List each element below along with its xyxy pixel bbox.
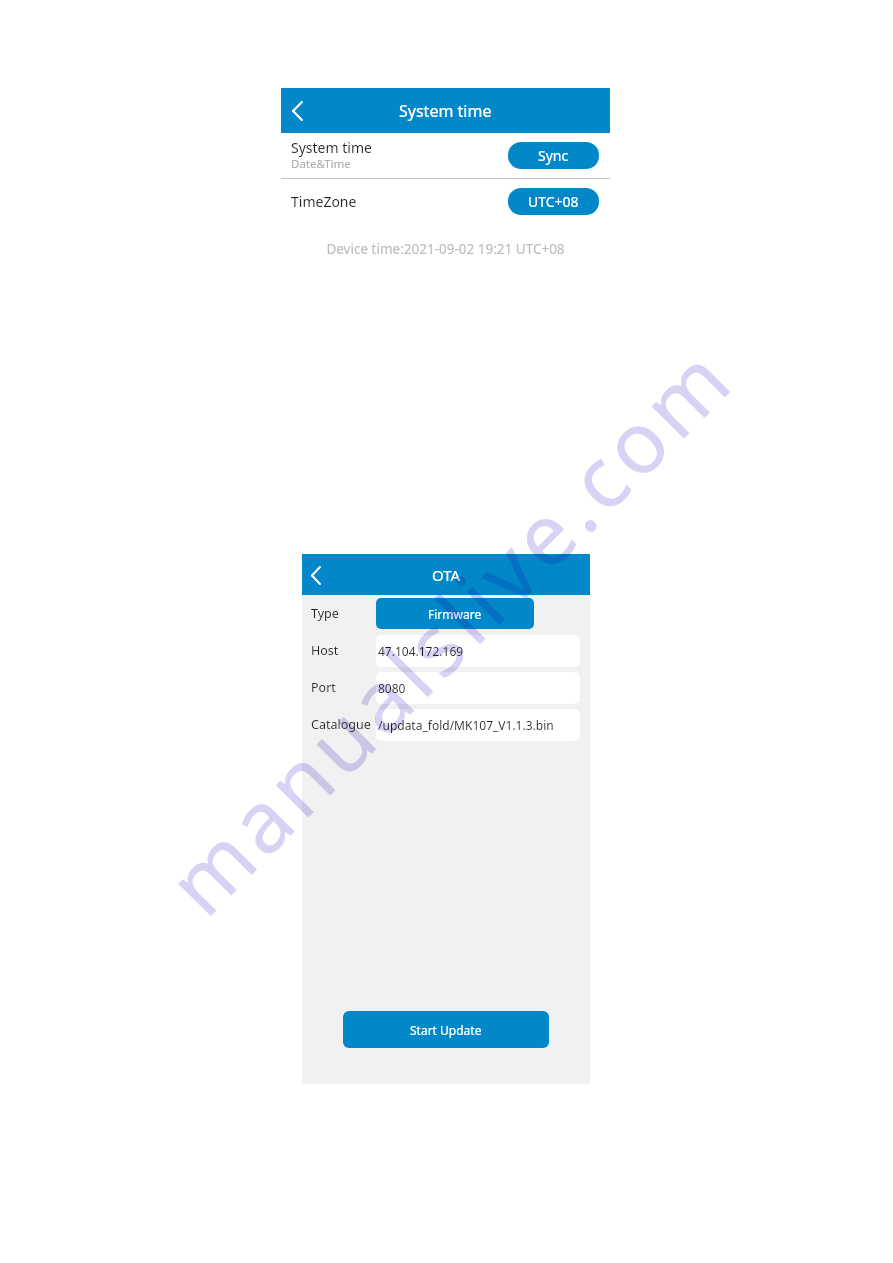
staticText: System time [291, 138, 372, 157]
button[interactable]: /updata_fold/MK107_V1.1.3.bin [376, 709, 580, 741]
staticText: 8080 [378, 680, 406, 696]
button[interactable]: 47.104.172.169 [376, 635, 580, 667]
staticText: Sync [538, 146, 569, 165]
button[interactable]: Back [284, 96, 310, 126]
staticText: TimeZone [291, 192, 357, 211]
button[interactable]: TimeZone [281, 179, 610, 223]
staticText: Type [311, 605, 376, 622]
button[interactable]: 8080 [376, 672, 580, 704]
staticText: Device time:2021-09-02 19:21 UTC+08 [281, 240, 610, 258]
button[interactable]: UTC+08 [508, 188, 599, 215]
button[interactable]: Start Update [343, 1011, 549, 1048]
staticText: Firmware [428, 606, 482, 622]
staticText: /updata_fold/MK107_V1.1.3.bin [378, 717, 554, 733]
staticText: Host [311, 642, 376, 659]
button[interactable]: System time [281, 133, 610, 178]
staticText: Port [311, 679, 376, 696]
button[interactable]: Sync [508, 142, 599, 169]
staticText: Start Update [410, 1022, 482, 1038]
staticText: 47.104.172.169 [378, 643, 464, 659]
staticText: Date&Time [291, 156, 351, 172]
staticText: OTA [432, 565, 461, 585]
staticText: Catalogue [311, 716, 376, 733]
button[interactable]: Back [304, 561, 328, 589]
staticText: UTC+08 [528, 192, 579, 211]
staticText: System time [399, 100, 492, 122]
button[interactable]: Firmware [376, 598, 534, 629]
